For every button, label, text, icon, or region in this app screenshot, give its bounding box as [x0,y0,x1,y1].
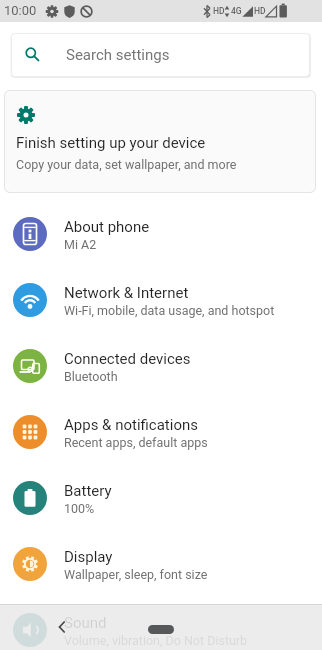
staticText: Recent apps, default apps [64,435,208,450]
staticText: Network & Internet [64,284,189,302]
button[interactable]: Apps & notifications [0,399,322,465]
staticText: Mi A2 [64,237,97,252]
staticText: Battery [64,482,112,500]
button[interactable]: Sound [0,597,322,650]
staticText: Search settings [66,46,170,64]
staticText: Apps & notifications [64,416,198,434]
button[interactable]: Finish setting up your device [4,90,316,193]
staticText: Volume, vibration, Do Not Disturb [64,633,248,648]
staticText: About phone [64,218,150,236]
staticText: 100% [64,501,95,516]
button[interactable] [47,612,77,642]
staticText: Connected devices [64,350,191,368]
button[interactable]: Network & Internet [0,267,322,333]
staticText: 4G [231,6,242,16]
staticText: HD [213,6,225,16]
button[interactable]: Search settings [11,33,310,77]
button[interactable]: Battery [0,465,322,531]
staticText: Display [64,548,113,566]
button[interactable]: About phone [0,201,322,267]
staticText: Copy your data, set wallpaper, and more [16,157,237,172]
staticText: Sound [64,614,107,632]
staticText: Finish setting up your device [16,134,206,152]
button[interactable] [148,625,174,634]
staticText: Wallpaper, sleep, font size [64,567,208,582]
staticText: 10:00 [4,3,37,18]
staticText: Bluetooth [64,369,118,384]
staticText: HD [254,6,266,16]
button[interactable]: Display [0,531,322,597]
staticText: Wi-Fi, mobile, data usage, and hotspot [64,303,275,318]
button[interactable]: Connected devices [0,333,322,399]
